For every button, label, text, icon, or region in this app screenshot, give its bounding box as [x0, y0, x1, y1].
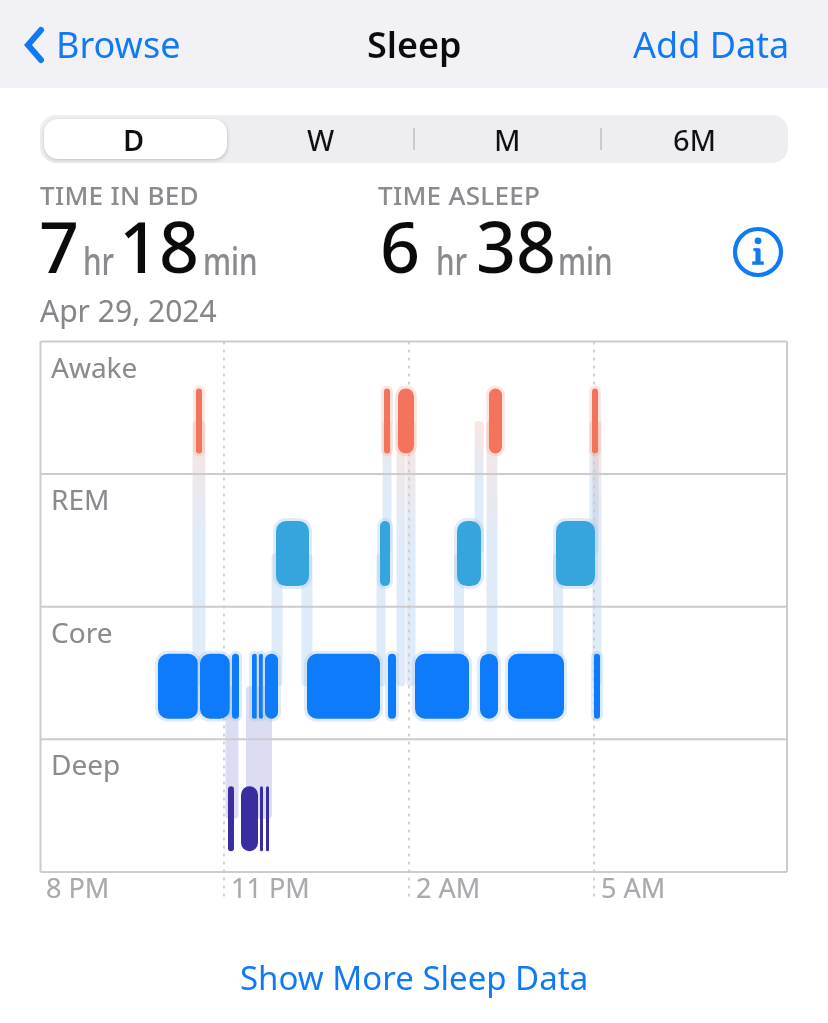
- staticText: 11 PM: [231, 869, 310, 906]
- staticText: REM: [51, 480, 110, 518]
- staticText: min: [558, 234, 613, 286]
- staticText: 18: [119, 198, 200, 293]
- staticText: W: [307, 120, 335, 159]
- staticText: Deep: [51, 745, 121, 783]
- staticText: 8 PM: [46, 869, 110, 906]
- staticText: 5 AM: [601, 869, 666, 906]
- button[interactable]: Add Data: [633, 20, 790, 69]
- button[interactable]: Browse: [24, 20, 181, 69]
- staticText: Awake: [51, 348, 138, 386]
- button[interactable]: 6M: [601, 115, 788, 163]
- staticText: 6M: [673, 120, 717, 159]
- staticText: Sleep: [367, 20, 462, 69]
- staticText: M: [494, 120, 521, 159]
- staticText: TIME ASLEEP: [378, 177, 541, 212]
- staticText: 7: [39, 198, 80, 293]
- staticText: D: [123, 120, 145, 159]
- staticText: 38: [476, 198, 557, 293]
- staticText: Core: [51, 613, 113, 651]
- staticText: Apr 29, 2024: [40, 290, 217, 331]
- button[interactable]: W: [227, 115, 414, 163]
- staticText: 2 AM: [416, 869, 481, 906]
- staticText: Add Data: [633, 20, 790, 69]
- staticText: Show More Sleep Data: [240, 955, 589, 1000]
- button[interactable]: [732, 226, 784, 278]
- staticText: hr: [436, 234, 467, 286]
- button[interactable]: Show More Sleep Data: [240, 955, 589, 1000]
- staticText: 6: [380, 198, 421, 293]
- button[interactable]: M: [414, 115, 601, 163]
- staticText: Browse: [56, 20, 181, 69]
- button[interactable]: D: [40, 115, 227, 163]
- staticText: hr: [83, 234, 114, 286]
- staticText: TIME IN BED: [40, 177, 199, 212]
- staticText: min: [203, 234, 258, 286]
